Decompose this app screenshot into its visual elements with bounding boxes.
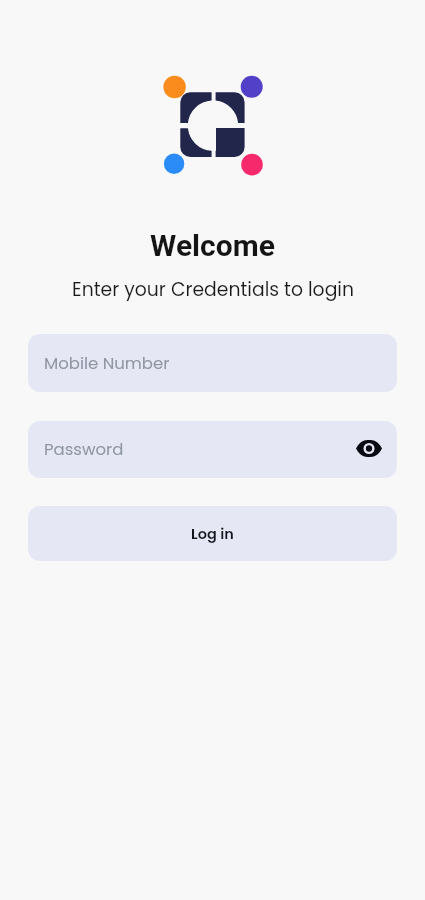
button[interactable]: Log in [28,506,397,561]
staticText: Enter your Credentials to login [72,276,354,302]
staticText: Log in [191,524,234,544]
button[interactable]: Password [28,421,397,478]
button[interactable]: Show password [352,431,386,465]
staticText: Welcome [150,228,275,263]
staticText: Mobile Number [44,352,170,375]
staticText: Password [44,438,124,461]
button[interactable]: Mobile Number [28,334,397,392]
